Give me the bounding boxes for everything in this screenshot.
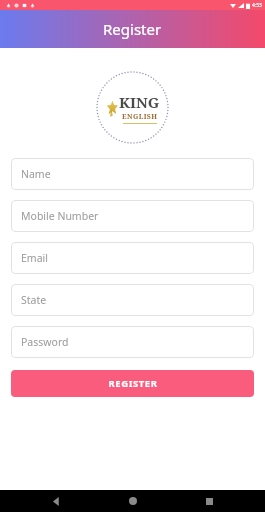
staticText: KING	[119, 92, 160, 112]
staticText: State	[21, 293, 47, 307]
button[interactable]: Recent apps	[189, 490, 229, 512]
staticText: Mobile Number	[21, 209, 99, 223]
button[interactable]: Password	[11, 326, 254, 358]
button[interactable]: Back	[36, 490, 76, 512]
staticText: Register	[103, 19, 162, 39]
staticText: ENGLISH	[122, 112, 158, 122]
button[interactable]: Email	[11, 242, 254, 274]
button[interactable]: Home	[113, 490, 153, 512]
button[interactable]: Mobile Number	[11, 200, 254, 232]
staticText: 4:53	[252, 2, 262, 9]
staticText: Password	[21, 335, 69, 349]
staticText: Name	[21, 167, 51, 181]
staticText: REGISTER	[108, 377, 158, 390]
button[interactable]: State	[11, 284, 254, 316]
staticText: Email	[21, 251, 48, 265]
button[interactable]: Name	[11, 158, 254, 190]
button[interactable]: REGISTER	[11, 370, 254, 397]
